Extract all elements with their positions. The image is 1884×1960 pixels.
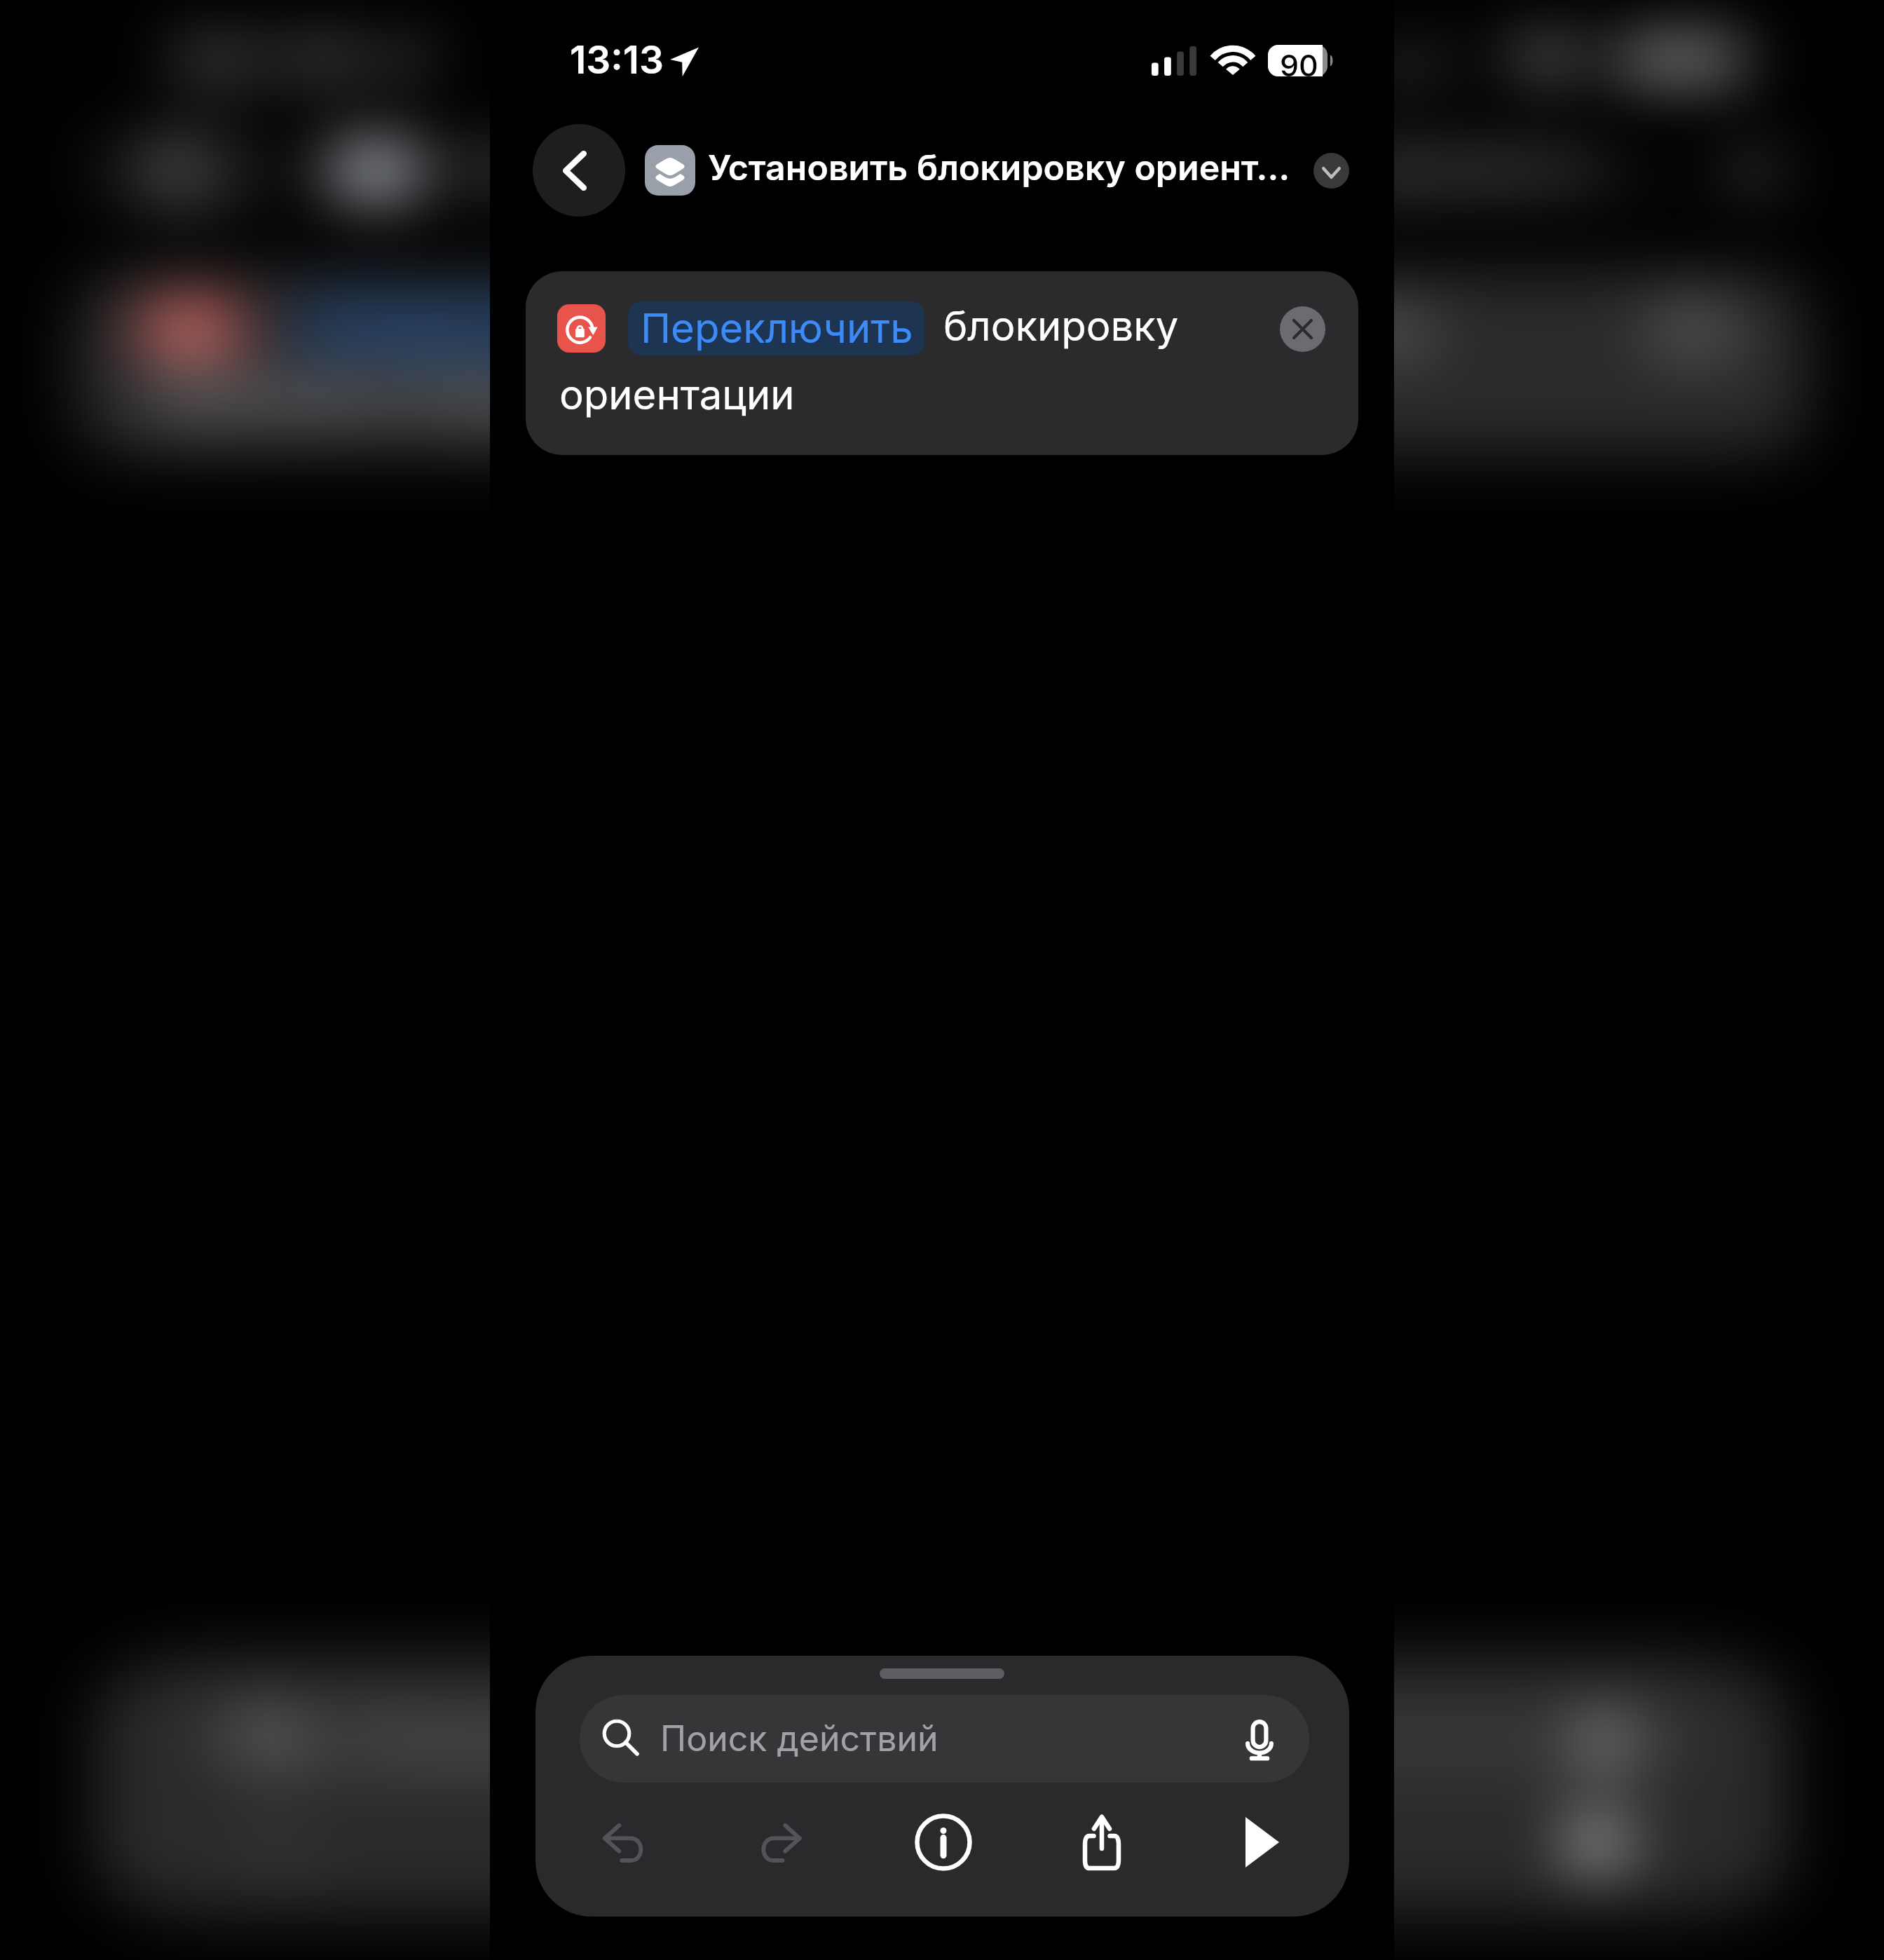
button[interactable]: Поиск действий (187, 1695, 1707, 1783)
staticText: Переключить (641, 304, 913, 353)
button[interactable]: Redo (744, 1803, 822, 1881)
staticText: 13:13 (166, 36, 364, 83)
button[interactable]: Redo (529, 1803, 692, 1881)
button[interactable]: Поиск действий (580, 1695, 1309, 1783)
button[interactable]: Show details (1313, 153, 1349, 189)
button[interactable]: Back (533, 124, 625, 217)
staticText: Поиск действий (660, 1717, 938, 1760)
button[interactable]: Run (1223, 1803, 1302, 1881)
button[interactable]: Переключить (628, 301, 924, 355)
staticText: 90 (1646, 47, 1726, 83)
staticText: Переключить (314, 304, 882, 353)
button[interactable]: Share (1193, 1803, 1357, 1881)
button[interactable]: Run (1528, 1803, 1691, 1881)
staticText: блокировку (945, 301, 1436, 351)
button[interactable]: Remove action (1280, 306, 1325, 352)
staticText: ориентации (145, 370, 635, 419)
button[interactable]: Remove action (1646, 306, 1741, 352)
staticText: блокировку (943, 301, 1179, 351)
button[interactable]: Переключить (526, 271, 1358, 455)
button[interactable]: Переключить (288, 301, 905, 355)
staticText: Установить блокировку ориент… (454, 147, 1681, 189)
button[interactable]: Переключить (75, 271, 1810, 455)
staticText: ориентации (559, 370, 795, 419)
staticText: Поиск действий (355, 1717, 935, 1760)
staticText: 90 (1280, 47, 1318, 83)
staticText: 13:13 (570, 36, 664, 83)
staticText: Установить блокировку ориент… (708, 147, 1297, 189)
button[interactable]: Info (904, 1803, 983, 1881)
button[interactable]: Info (863, 1803, 1027, 1881)
button[interactable]: Undo (585, 1803, 664, 1881)
button[interactable]: Share (1063, 1803, 1141, 1881)
button[interactable]: Back (89, 124, 282, 217)
